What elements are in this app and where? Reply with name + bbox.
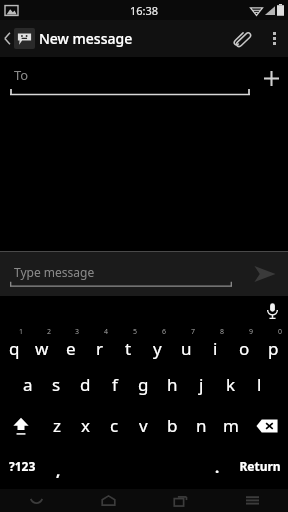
staticText: 3 — [75, 327, 80, 337]
button[interactable]: l — [245, 364, 274, 405]
staticText: Return — [239, 458, 281, 474]
button[interactable]: z — [42, 405, 71, 446]
staticText: New message — [39, 29, 133, 48]
staticText: 8 — [220, 327, 225, 337]
button[interactable]: d — [71, 364, 100, 405]
staticText: g — [138, 373, 149, 396]
button[interactable]: Recent apps — [144, 489, 216, 512]
button[interactable]: h — [158, 364, 187, 405]
staticText: o — [239, 337, 250, 360]
staticText: r — [96, 337, 104, 360]
button[interactable]: Return — [231, 446, 288, 486]
button[interactable]: 6 — [143, 325, 172, 364]
button[interactable]: 4 — [85, 325, 114, 364]
staticText: 7 — [191, 327, 196, 337]
staticText: , — [56, 460, 61, 480]
button[interactable]: Send — [242, 252, 288, 296]
button[interactable]: b — [158, 405, 187, 446]
button[interactable]: 1 — [0, 325, 28, 364]
button[interactable]: 2 — [28, 325, 56, 364]
staticText: To — [14, 66, 29, 84]
button[interactable]: Add recipient — [254, 57, 288, 99]
staticText: q — [9, 337, 20, 360]
staticText: b — [167, 414, 178, 437]
button[interactable]: x — [71, 405, 100, 446]
button[interactable]: g — [129, 364, 158, 405]
staticText: y — [153, 337, 162, 360]
staticText: x — [81, 414, 90, 437]
button[interactable]: ?123 — [0, 446, 44, 486]
staticText: 9 — [249, 327, 254, 337]
staticText: h — [167, 373, 178, 396]
button[interactable]: 7 — [172, 325, 201, 364]
staticText: w — [35, 337, 49, 360]
staticText: 6 — [162, 327, 167, 337]
button[interactable]: 0 — [259, 325, 288, 364]
button[interactable]: To — [0, 57, 254, 99]
staticText: c — [110, 414, 119, 437]
staticText: Type message — [14, 264, 95, 280]
button[interactable]: Navigate up — [0, 28, 41, 49]
staticText: 16:38 — [130, 3, 159, 18]
button[interactable]: Shift — [0, 405, 42, 446]
staticText: d — [80, 373, 91, 396]
button[interactable]: Hide keyboard — [0, 489, 72, 512]
staticText: n — [196, 414, 207, 437]
staticText: p — [268, 337, 279, 360]
button[interactable]: Comma — [44, 446, 72, 486]
staticText: j — [199, 373, 204, 396]
staticText: a — [23, 373, 33, 396]
staticText: i — [213, 337, 218, 360]
staticText: s — [52, 373, 61, 396]
button[interactable]: 3 — [56, 325, 85, 364]
button[interactable]: j — [187, 364, 216, 405]
button[interactable]: Period — [203, 446, 231, 486]
staticText: z — [53, 414, 61, 437]
button[interactable]: Attach — [224, 20, 260, 57]
button[interactable]: More options — [260, 20, 288, 57]
button[interactable]: n — [187, 405, 216, 446]
staticText: t — [125, 337, 132, 360]
staticText: 5 — [133, 327, 138, 337]
button[interactable]: Menu — [216, 489, 288, 512]
staticText: l — [257, 373, 262, 396]
button[interactable]: v — [129, 405, 158, 446]
button[interactable]: 5 — [114, 325, 143, 364]
staticText: e — [66, 337, 76, 360]
button[interactable]: k — [216, 364, 245, 405]
button[interactable]: a — [13, 364, 42, 405]
staticText: u — [181, 337, 192, 360]
staticText: ?123 — [9, 458, 36, 474]
staticText: 0 — [278, 327, 283, 337]
staticText: f — [112, 373, 118, 396]
staticText: . — [215, 457, 220, 477]
button[interactable]: Type message — [10, 257, 232, 291]
button[interactable]: Backspace — [245, 405, 288, 446]
button[interactable]: c — [100, 405, 129, 446]
button[interactable]: 8 — [201, 325, 230, 364]
button[interactable]: m — [216, 405, 245, 446]
staticText: 1 — [19, 327, 24, 337]
staticText: v — [139, 414, 148, 437]
staticText: 4 — [104, 327, 109, 337]
button[interactable]: f — [100, 364, 129, 405]
staticText: m — [223, 414, 239, 437]
button[interactable]: Voice input — [256, 296, 288, 325]
button[interactable]: s — [42, 364, 71, 405]
staticText: 2 — [47, 327, 52, 337]
button[interactable]: Home — [72, 489, 144, 512]
button[interactable]: 9 — [230, 325, 259, 364]
staticText: k — [226, 373, 236, 396]
